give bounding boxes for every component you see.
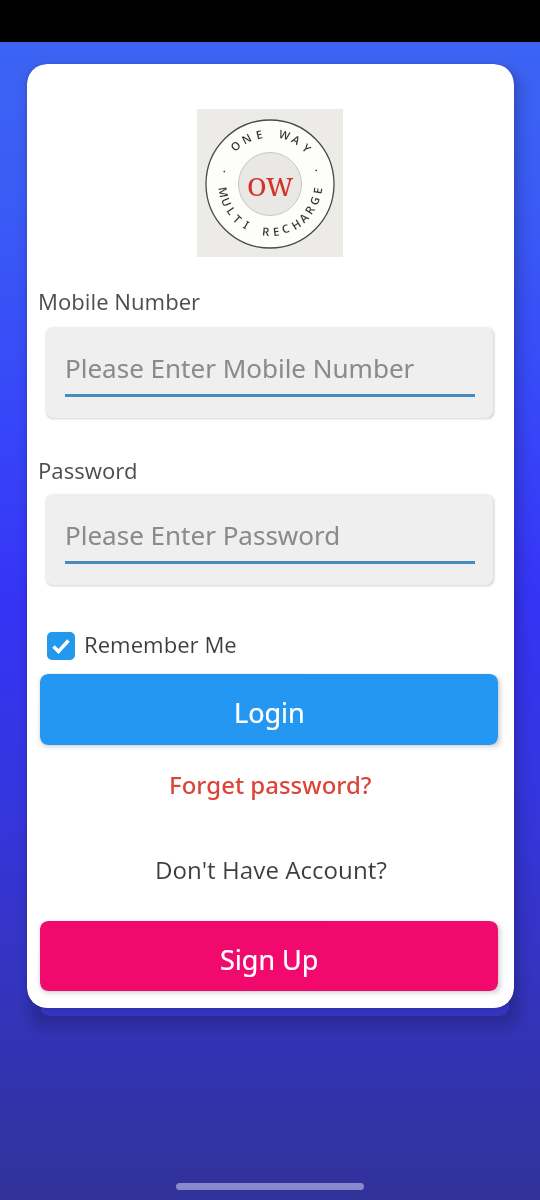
button[interactable]: Please Enter Password	[46, 494, 493, 585]
staticText: W	[277, 126, 292, 144]
staticText: Password	[38, 455, 138, 485]
staticText: Forget password?	[169, 768, 372, 801]
staticText: Sign Up	[220, 941, 319, 978]
staticText: U	[217, 195, 235, 210]
staticText: C	[279, 220, 292, 238]
staticText: G	[306, 193, 324, 207]
staticText: T	[229, 211, 245, 228]
staticText: A	[295, 209, 312, 226]
staticText: H	[288, 216, 304, 234]
staticText: Login	[234, 694, 305, 731]
staticText: Mobile Number	[38, 286, 201, 316]
staticText: E	[254, 126, 265, 143]
button[interactable]: Forget password?	[27, 768, 514, 801]
staticText: ·	[216, 168, 232, 176]
staticText: ·	[308, 166, 324, 174]
staticText: Don't Have Account?	[155, 853, 387, 886]
staticText: A	[288, 131, 303, 149]
staticText: Please Enter Password	[65, 517, 341, 552]
button[interactable]: Login	[40, 674, 498, 745]
button[interactable]: Please Enter Mobile Number	[46, 327, 493, 418]
staticText: I	[240, 217, 253, 233]
staticText: O	[227, 137, 245, 155]
button[interactable]: Remember Me	[47, 632, 267, 660]
staticText: M	[214, 186, 232, 199]
staticText: Remember Me	[84, 629, 237, 657]
staticText: R	[301, 202, 319, 218]
staticText: N	[239, 130, 255, 148]
staticText: Please Enter Mobile Number	[65, 350, 415, 385]
staticText: E	[272, 224, 281, 240]
staticText: L	[223, 204, 240, 219]
staticText: Y	[298, 140, 314, 156]
staticText: R	[261, 224, 271, 240]
staticText: OW	[247, 168, 294, 200]
button[interactable]: Sign Up	[40, 921, 498, 991]
staticText: E	[310, 186, 326, 195]
